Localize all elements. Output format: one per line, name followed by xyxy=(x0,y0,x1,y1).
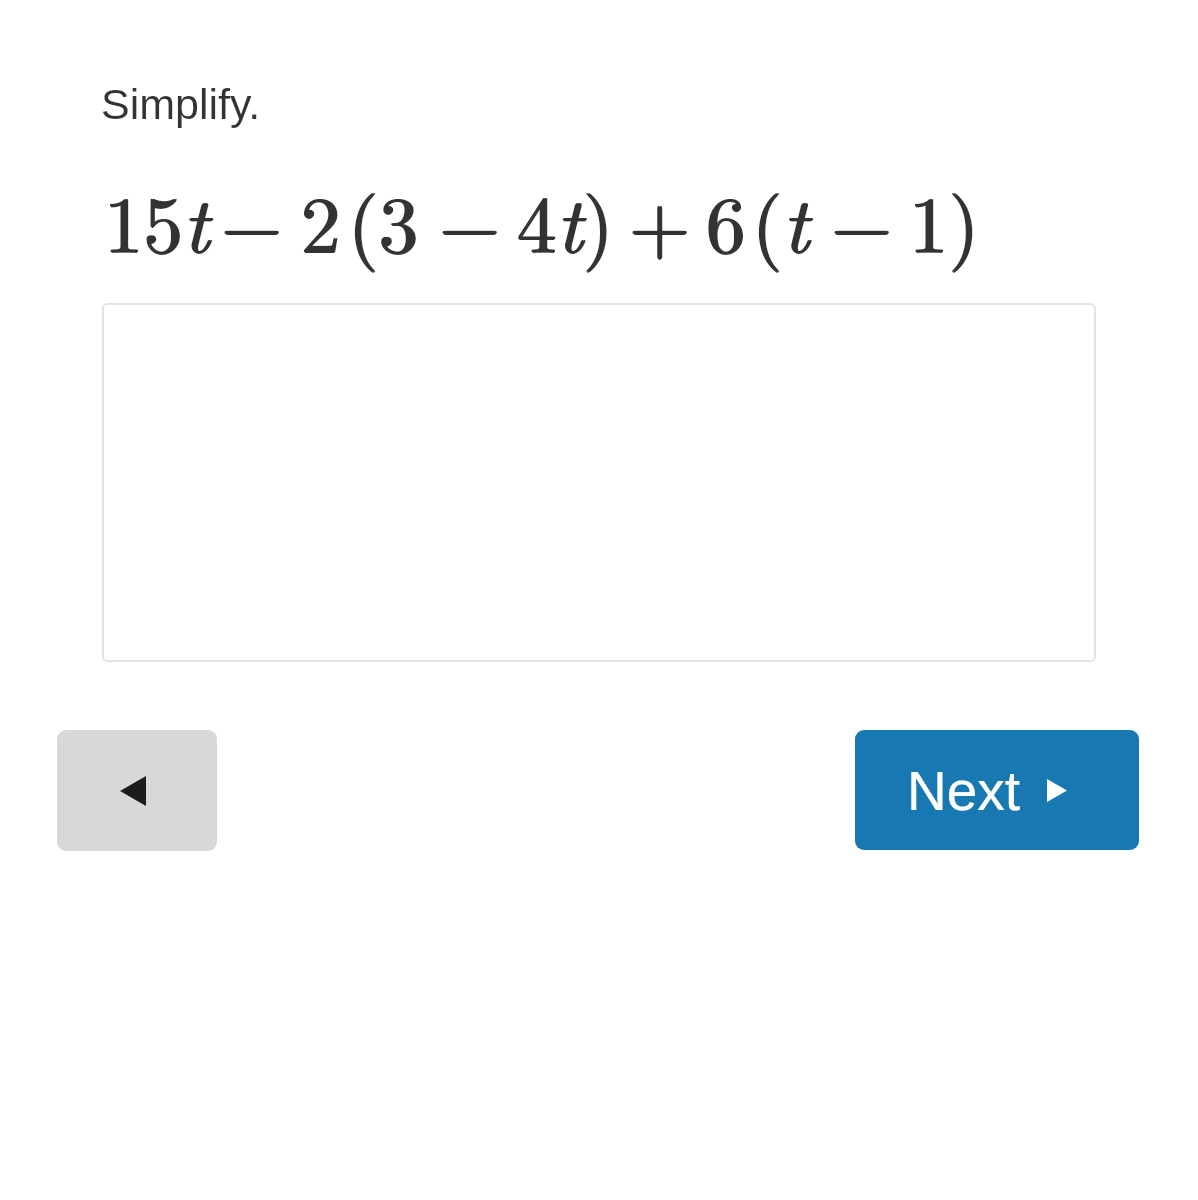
staticText: 1) xyxy=(909,164,980,276)
staticText: 1) xyxy=(908,163,979,275)
staticText: 4t) xyxy=(516,163,613,275)
staticText: − xyxy=(221,164,283,276)
staticText: (3 xyxy=(348,164,419,276)
staticText: 2 xyxy=(300,163,340,275)
staticText: 4t) xyxy=(518,163,615,275)
staticText: 2 xyxy=(301,164,341,276)
staticText: Next xyxy=(907,760,1021,821)
staticText: 2 xyxy=(302,163,342,275)
staticText: (t xyxy=(751,163,808,275)
staticText: (t xyxy=(752,164,809,276)
staticText: + xyxy=(630,163,692,275)
staticText: + xyxy=(629,164,691,276)
staticText: 4t) xyxy=(517,164,614,276)
staticText: 6 xyxy=(705,163,745,275)
staticText: (3 xyxy=(349,163,420,275)
staticText: + xyxy=(628,163,690,275)
staticText: (3 xyxy=(347,163,418,275)
staticText: 6 xyxy=(707,163,747,275)
staticText: − xyxy=(830,163,892,275)
staticText: 1) xyxy=(910,163,981,275)
staticText: − xyxy=(831,164,893,276)
staticText: − xyxy=(222,163,284,275)
staticText: − xyxy=(438,163,500,275)
staticText: − xyxy=(220,163,282,275)
staticText: (t xyxy=(753,163,810,275)
button[interactable] xyxy=(102,303,1096,662)
staticText: Simplify. xyxy=(101,80,261,128)
staticText: − xyxy=(440,163,502,275)
staticText: − xyxy=(832,163,894,275)
staticText: 15t xyxy=(104,164,210,276)
staticText: − xyxy=(439,164,501,276)
staticText: 15t xyxy=(103,163,209,275)
staticText: 6 xyxy=(706,164,746,276)
staticText: 15t xyxy=(105,163,211,275)
button[interactable] xyxy=(57,730,217,851)
button[interactable]: Next xyxy=(855,730,1139,850)
